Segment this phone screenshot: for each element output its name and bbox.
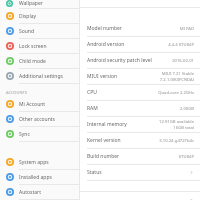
button[interactable]: Installed apps bbox=[0, 170, 79, 185]
button[interactable]: CPU bbox=[80, 85, 200, 101]
staticText: Status bbox=[87, 169, 102, 176]
staticText: MI PAD bbox=[179, 26, 194, 32]
button[interactable]: MIUI version bbox=[80, 69, 200, 85]
button[interactable]: Additional settings bbox=[0, 69, 79, 84]
button[interactable]: Build number bbox=[80, 149, 200, 165]
staticText: Sound bbox=[19, 28, 35, 35]
staticText: Mi Account bbox=[19, 101, 46, 108]
staticText: 12.91GB available bbox=[159, 119, 194, 125]
staticText: 7.2.1.0(KXFCNDA) bbox=[159, 77, 194, 83]
staticText: Autostart bbox=[19, 189, 41, 196]
button[interactable]: Sync bbox=[0, 127, 79, 142]
staticText: 2.00GB bbox=[179, 106, 194, 112]
button[interactable]: Android version bbox=[80, 37, 200, 53]
button[interactable]: Status bbox=[80, 165, 200, 181]
other: Open bbox=[189, 170, 194, 175]
button[interactable]: Sound bbox=[0, 24, 79, 39]
staticText: Lock screen bbox=[19, 43, 47, 50]
staticText: Build number bbox=[87, 153, 120, 160]
button[interactable]: RAM bbox=[80, 101, 200, 117]
staticText: Model number bbox=[87, 25, 122, 32]
staticText: Display bbox=[19, 13, 37, 20]
staticText: MIUI 7.21 Stable bbox=[161, 71, 194, 77]
staticText: RAM bbox=[87, 105, 98, 112]
button[interactable]: Lock screen bbox=[0, 39, 79, 54]
staticText: Quad-core 2.2GHz bbox=[158, 90, 194, 96]
button[interactable]: Mi Account bbox=[0, 97, 79, 112]
staticText: MIUI version bbox=[87, 73, 118, 80]
staticText: 16GB total bbox=[173, 125, 194, 131]
button[interactable]: Display bbox=[0, 9, 79, 24]
staticText: 4.4.4 KTU84P bbox=[168, 42, 194, 48]
staticText: CPU bbox=[87, 89, 97, 96]
button[interactable]: Other accounts bbox=[0, 112, 79, 127]
staticText: 3.10.24-g4727b4c bbox=[159, 138, 194, 144]
staticText: Child mode bbox=[19, 58, 46, 65]
button[interactable]: Kernel version bbox=[80, 133, 200, 149]
staticText: Other accounts bbox=[19, 116, 55, 123]
staticText: Kernel version bbox=[87, 137, 121, 144]
button[interactable]: Autostart bbox=[0, 185, 79, 200]
staticText: Android security patch level bbox=[87, 57, 152, 64]
button[interactable]: Android security patch level bbox=[80, 53, 200, 69]
staticText: Additional settings bbox=[19, 73, 63, 80]
button[interactable]: Child mode bbox=[0, 54, 79, 69]
staticText: Installed apps bbox=[19, 174, 52, 181]
button[interactable]: System apps bbox=[0, 155, 79, 170]
staticText: Sync bbox=[19, 131, 30, 138]
button[interactable]: Internal memory bbox=[80, 117, 200, 133]
staticText: Internal memory bbox=[87, 121, 127, 128]
staticText: Android version bbox=[87, 41, 125, 48]
staticText: ACCOUNTS bbox=[6, 90, 27, 95]
button[interactable]: Model number bbox=[80, 21, 200, 37]
staticText: System apps bbox=[19, 159, 49, 166]
staticText: KTU84P bbox=[178, 154, 194, 160]
staticText: Wallpaper bbox=[19, 0, 43, 7]
staticText: 2016-02-01 bbox=[172, 58, 194, 64]
